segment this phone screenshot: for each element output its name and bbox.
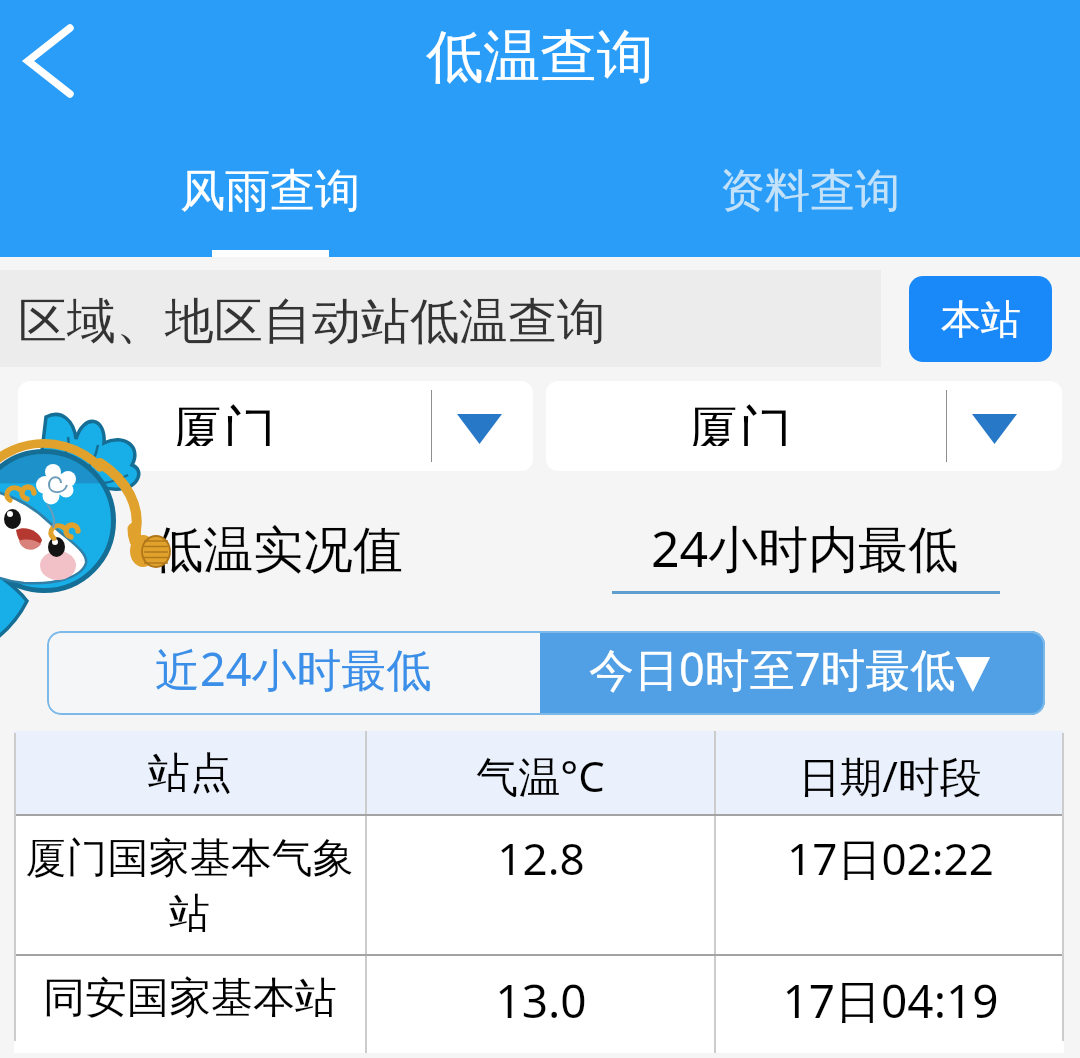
staticText: 气温°C xyxy=(476,747,605,804)
staticText: 本站 xyxy=(941,294,1021,344)
button[interactable]: 厦门 xyxy=(546,381,1062,471)
staticText: 日期/时段 xyxy=(798,747,982,804)
button[interactable]: 同安国家基本站 xyxy=(14,956,365,1053)
staticText: 区域、地区自动站低温查询 xyxy=(18,291,606,353)
button[interactable]: 12.8 xyxy=(367,816,714,954)
staticText: 厦门 xyxy=(686,398,792,446)
button[interactable]: 厦门 xyxy=(18,381,533,471)
staticText: 12.8 xyxy=(497,828,585,888)
staticText: 24小时内最低 xyxy=(651,514,959,576)
button[interactable]: 24小时内最低 xyxy=(550,514,1060,610)
button[interactable]: 低温实况值 xyxy=(23,519,533,581)
staticText: 近24小时最低 xyxy=(155,638,432,699)
staticText: 低温查询 xyxy=(426,21,654,93)
staticText: 13.0 xyxy=(495,969,587,1032)
button[interactable]: 厦门国家基本气象站 xyxy=(14,816,365,954)
button[interactable]: Back xyxy=(4,16,94,106)
staticText: 站点 xyxy=(148,747,232,800)
staticText: 同安国家基本站 xyxy=(43,972,337,1025)
button[interactable]: 日期/时段 xyxy=(716,731,1064,814)
staticText: 今日0时至7时最低▼ xyxy=(589,638,991,699)
staticText: 风雨查询 xyxy=(180,163,360,220)
staticText: 厦门国家基本气象站 xyxy=(18,833,361,939)
button[interactable]: 资料查询 xyxy=(540,160,1080,222)
button[interactable]: 气温°C xyxy=(367,731,714,814)
button[interactable]: 17日02:22 xyxy=(716,816,1064,954)
button[interactable]: 近24小时最低 xyxy=(47,631,540,715)
staticText: 17日02:22 xyxy=(787,828,994,888)
staticText: 厦门 xyxy=(170,398,276,446)
button[interactable]: 17日04:19 xyxy=(716,956,1064,1053)
staticText: 低温实况值 xyxy=(153,519,403,581)
button[interactable]: 区域、地区自动站低温查询 xyxy=(0,270,881,367)
button[interactable]: 本站 xyxy=(909,276,1052,362)
button[interactable]: 站点 xyxy=(14,731,365,814)
button[interactable]: 风雨查询 xyxy=(0,160,540,222)
button[interactable]: 13.0 xyxy=(367,956,714,1053)
staticText: 资料查询 xyxy=(720,163,900,220)
staticText: 17日04:19 xyxy=(782,969,999,1032)
button[interactable]: 今日0时至7时最低▼ xyxy=(540,631,1045,715)
